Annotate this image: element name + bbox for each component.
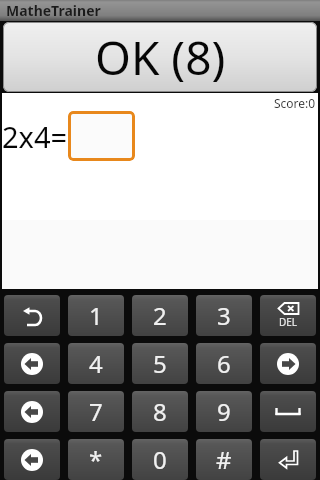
button[interactable]: [260, 439, 316, 480]
staticText: 8: [153, 395, 167, 428]
button[interactable]: *: [68, 439, 124, 480]
staticText: 4: [89, 347, 103, 380]
staticText: DEL: [279, 315, 298, 329]
button[interactable]: 7: [68, 391, 124, 432]
staticText: 5: [153, 347, 167, 380]
button[interactable]: 8: [132, 391, 188, 432]
button[interactable]: [4, 439, 60, 480]
button[interactable]: [4, 391, 60, 432]
button[interactable]: OK (8): [3, 22, 317, 92]
button[interactable]: [260, 343, 316, 384]
staticText: 6: [217, 347, 231, 380]
staticText: 2x4=: [2, 117, 68, 156]
button[interactable]: [68, 111, 135, 161]
staticText: 0: [153, 443, 167, 476]
staticText: #: [216, 443, 232, 476]
staticText: 7: [89, 395, 103, 428]
button[interactable]: 9: [196, 391, 252, 432]
button[interactable]: [4, 343, 60, 384]
staticText: 9: [217, 395, 231, 428]
button[interactable]: DEL: [260, 295, 316, 336]
button[interactable]: 6: [196, 343, 252, 384]
staticText: 2: [153, 299, 167, 332]
button[interactable]: 0: [132, 439, 188, 480]
button[interactable]: #: [196, 439, 252, 480]
staticText: OK (8): [95, 26, 226, 89]
staticText: *: [89, 443, 103, 476]
button[interactable]: 2: [132, 295, 188, 336]
staticText: 3: [217, 299, 231, 332]
staticText: 1: [89, 299, 103, 332]
button[interactable]: [260, 391, 316, 432]
button[interactable]: 5: [132, 343, 188, 384]
button[interactable]: 4: [68, 343, 124, 384]
button[interactable]: 1: [68, 295, 124, 336]
button[interactable]: 3: [196, 295, 252, 336]
button[interactable]: [4, 295, 60, 336]
staticText: Score:0: [274, 95, 316, 111]
staticText: MatheTrainer: [6, 1, 101, 20]
